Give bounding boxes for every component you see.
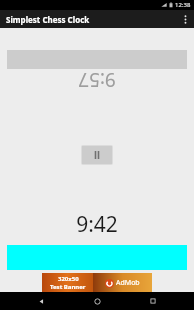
button[interactable]: Back [26,292,56,310]
button[interactable]: Recent apps [138,292,168,310]
button[interactable]: Pause [82,146,112,164]
staticText: Simplest Chess Clock [6,14,90,25]
button[interactable]: Advertisement [42,273,152,292]
staticText: AdMob [116,278,140,288]
button[interactable]: More options [176,10,194,28]
button[interactable]: Home [82,292,112,310]
staticText: Test Banner [50,283,86,291]
staticText: 9:42 [76,210,118,239]
staticText: 9:57 [78,71,116,93]
staticText: 320x50 [58,275,79,283]
staticText: 12:38 [175,1,191,9]
